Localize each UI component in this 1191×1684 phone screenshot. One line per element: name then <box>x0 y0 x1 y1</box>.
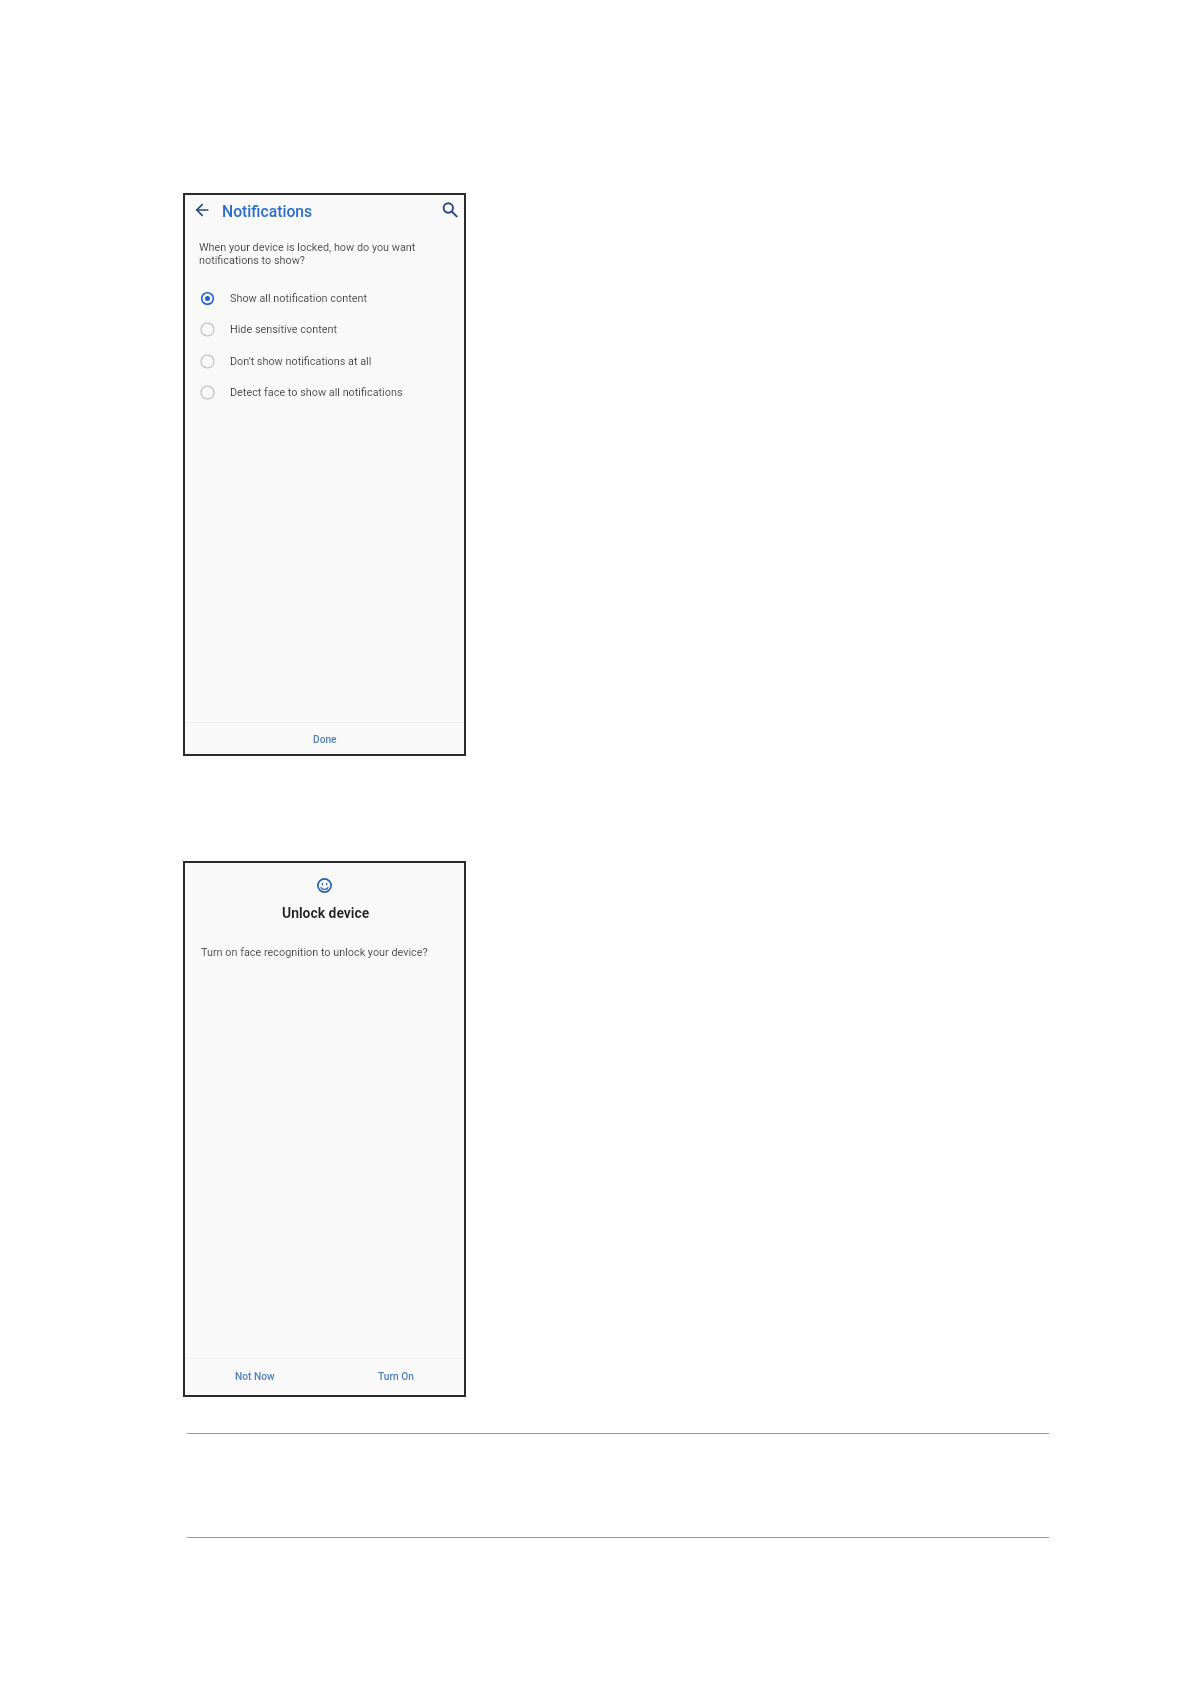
button[interactable]: Turn On <box>324 1359 464 1395</box>
staticText: Don't show notifications at all <box>230 355 372 368</box>
button[interactable]: Show all notification content <box>185 283 464 313</box>
staticText: Turn on face recognition to unlock your … <box>201 946 428 964</box>
staticText: Notifications <box>222 202 313 220</box>
staticText: When your device is locked, how do you w… <box>199 241 416 266</box>
staticText: Hide sensitive content <box>230 323 337 336</box>
staticText: Detect face to show all notifications <box>230 386 403 399</box>
staticText: Unlock device <box>282 905 370 921</box>
button[interactable]: Not Now <box>185 1359 324 1395</box>
button[interactable]: Detect face to show all notifications <box>185 377 464 407</box>
staticText: Show all notification content <box>230 292 367 305</box>
staticText: Done <box>313 734 337 746</box>
staticText: Turn On <box>378 1371 415 1383</box>
button[interactable]: Back <box>190 198 214 222</box>
button[interactable]: Don't show notifications at all <box>185 346 464 376</box>
button[interactable]: Search <box>437 197 461 221</box>
staticText: Not Now <box>235 1371 275 1383</box>
button[interactable]: Hide sensitive content <box>185 314 464 344</box>
button[interactable]: Done <box>185 723 464 754</box>
